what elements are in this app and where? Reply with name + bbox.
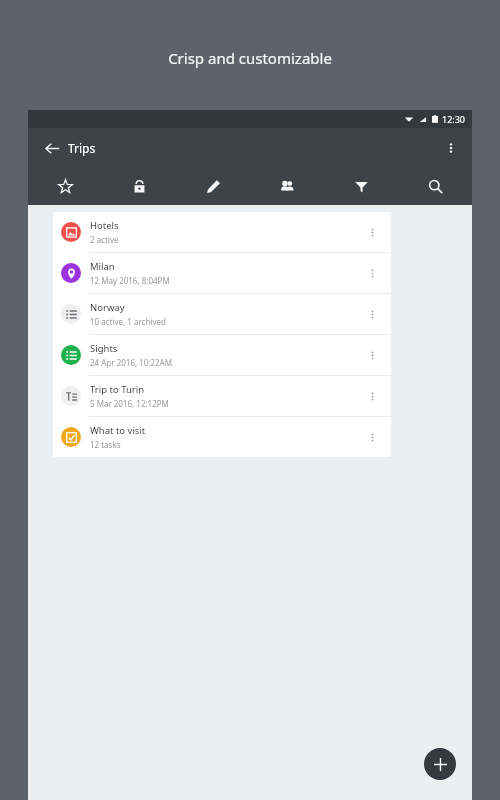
staticText: What to visit: [90, 424, 146, 437]
staticText: Hotels: [90, 219, 119, 232]
button[interactable]: More options: [437, 134, 465, 162]
button[interactable]: Lock: [102, 168, 176, 205]
staticText: Trips: [68, 140, 96, 156]
staticText: Norway: [90, 301, 125, 314]
staticText: Crisp and customizable: [168, 48, 332, 68]
button[interactable]: Search: [398, 168, 472, 205]
staticText: 5 Mar 2016, 12:12PM: [90, 398, 169, 409]
button[interactable]: Favorites: [28, 168, 102, 205]
button[interactable]: Sights: [53, 335, 391, 375]
button[interactable]: Back: [36, 132, 68, 164]
staticText: 12:30: [442, 113, 466, 125]
button[interactable]: Item options: [361, 426, 383, 448]
staticText: 10 active, 1 archived: [90, 316, 166, 327]
button[interactable]: Filter: [324, 168, 398, 205]
button[interactable]: Add: [424, 748, 456, 780]
staticText: 24 Apr 2016, 10:22AM: [90, 357, 172, 368]
staticText: 12 tasks: [90, 439, 121, 450]
staticText: 12 May 2016, 8:04PM: [90, 275, 170, 286]
button[interactable]: Item options: [361, 385, 383, 407]
staticText: Milan: [90, 260, 115, 273]
button[interactable]: Hotels: [53, 212, 391, 252]
staticText: Trip to Turin: [90, 383, 145, 396]
button[interactable]: Item options: [361, 262, 383, 284]
button[interactable]: Edit: [176, 168, 250, 205]
button[interactable]: Milan: [53, 253, 391, 293]
button[interactable]: Item options: [361, 303, 383, 325]
button[interactable]: People: [250, 168, 324, 205]
staticText: 2 active: [90, 234, 119, 245]
button[interactable]: Item options: [361, 221, 383, 243]
button[interactable]: Item options: [361, 344, 383, 366]
button[interactable]: What to visit: [53, 417, 391, 457]
staticText: Sights: [90, 342, 118, 355]
button[interactable]: Trip to Turin: [53, 376, 391, 416]
button[interactable]: Norway: [53, 294, 391, 334]
